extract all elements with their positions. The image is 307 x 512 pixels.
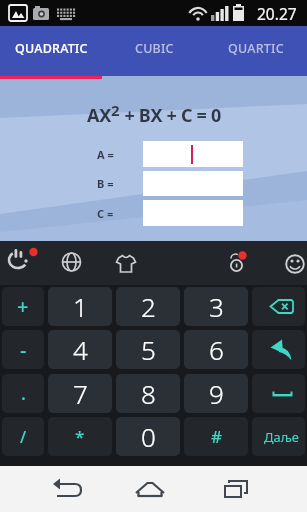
- button[interactable]: Даље: [252, 417, 305, 456]
- staticText: 3: [209, 289, 224, 324]
- button[interactable]: [44, 466, 90, 512]
- button[interactable]: +: [2, 287, 44, 326]
- staticText: QUARTIC: [228, 40, 284, 57]
- button[interactable]: [213, 466, 259, 512]
- button[interactable]: 0: [116, 417, 180, 456]
- button[interactable]: [252, 287, 305, 326]
- button[interactable]: [252, 374, 305, 413]
- button[interactable]: [252, 330, 305, 369]
- staticText: 6: [209, 332, 224, 367]
- staticText: *: [75, 425, 85, 448]
- staticText: 2: [141, 289, 156, 324]
- staticText: QUADRATIC: [15, 40, 88, 57]
- staticText: Даље: [264, 428, 300, 446]
- button[interactable]: 3: [184, 287, 248, 326]
- button[interactable]: 1: [48, 287, 112, 326]
- staticText: -: [20, 336, 27, 363]
- staticText: 9: [209, 376, 224, 411]
- button[interactable]: QUADRATIC: [0, 26, 103, 70]
- staticText: /: [20, 426, 27, 448]
- button[interactable]: 6: [184, 330, 248, 369]
- button[interactable]: *: [48, 417, 112, 456]
- staticText: +: [17, 293, 29, 320]
- button[interactable]: 5: [116, 330, 180, 369]
- staticText: + BX + C = 0: [120, 103, 221, 128]
- button[interactable]: 7: [48, 374, 112, 413]
- staticText: A =: [97, 147, 114, 162]
- button[interactable]: /: [2, 417, 44, 456]
- staticText: 8: [141, 376, 156, 411]
- staticText: .: [21, 381, 26, 406]
- staticText: 1: [73, 289, 88, 324]
- button[interactable]: 8: [116, 374, 180, 413]
- button[interactable]: [143, 141, 243, 167]
- button[interactable]: CUBIC: [103, 26, 205, 70]
- button[interactable]: 2: [116, 287, 180, 326]
- button[interactable]: 4: [48, 330, 112, 369]
- button[interactable]: 9: [184, 374, 248, 413]
- staticText: 7: [73, 376, 88, 411]
- staticText: AX: [87, 103, 111, 128]
- staticText: C =: [97, 206, 114, 221]
- staticText: CUBIC: [135, 40, 174, 57]
- button[interactable]: .: [2, 374, 44, 413]
- staticText: 4: [73, 332, 88, 367]
- button[interactable]: -: [2, 330, 44, 369]
- staticText: 0: [141, 419, 156, 454]
- staticText: 2: [111, 100, 120, 120]
- staticText: #: [211, 425, 222, 448]
- staticText: B =: [97, 176, 114, 191]
- staticText: 5: [141, 332, 156, 367]
- button[interactable]: QUARTIC: [205, 26, 307, 70]
- staticText: 20.27: [257, 3, 297, 24]
- button[interactable]: [127, 466, 173, 512]
- button[interactable]: #: [184, 417, 248, 456]
